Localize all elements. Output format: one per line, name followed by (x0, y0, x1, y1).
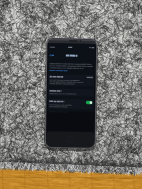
button[interactable] (0, 0, 142, 189)
